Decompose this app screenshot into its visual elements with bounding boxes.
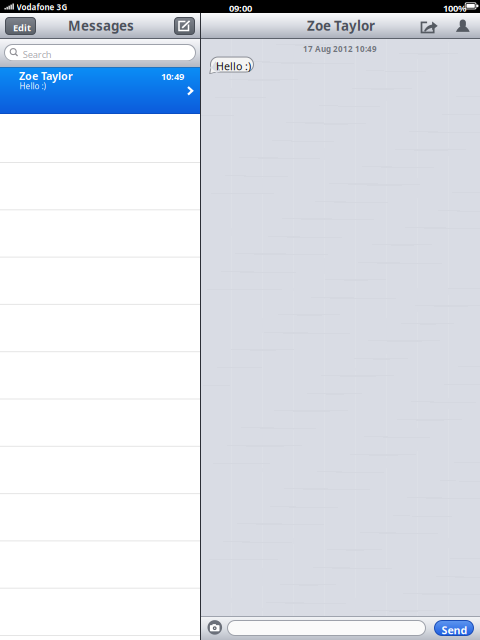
staticText: Edit (13, 21, 31, 34)
button[interactable]: Send (434, 620, 474, 636)
staticText: Send (441, 623, 467, 637)
button[interactable]: Zoe Taylor (0, 67, 200, 114)
staticText: Vodafone 3G (16, 2, 67, 12)
staticText: Messages (68, 17, 134, 34)
staticText: 09:00 (229, 2, 252, 14)
staticText: Hello :) (19, 81, 45, 91)
button[interactable]: Camera (207, 620, 222, 635)
staticText: 100% (443, 2, 466, 14)
staticText: Search (23, 48, 52, 61)
staticText: 10:49 (161, 70, 184, 83)
staticText: 17 Aug 2012 10:49 (303, 43, 377, 54)
button[interactable]: Contact info (452, 16, 473, 35)
staticText: Zoe Taylor (307, 17, 375, 34)
staticText: Hello :) (216, 59, 251, 73)
button[interactable]: Compose (174, 17, 195, 35)
staticText: Zoe Taylor (19, 69, 73, 83)
button[interactable]: Edit (5, 17, 36, 35)
button[interactable]: Share (417, 18, 441, 37)
